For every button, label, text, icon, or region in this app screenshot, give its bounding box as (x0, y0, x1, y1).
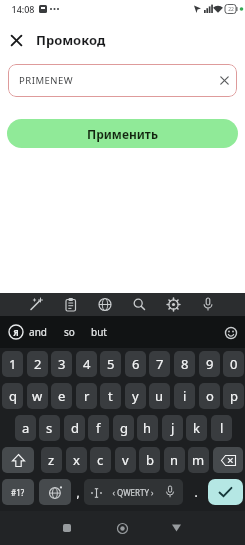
button[interactable]: 0 (223, 351, 244, 377)
staticText: 3 (58, 355, 66, 373)
staticText: 14:08 (11, 3, 35, 15)
button[interactable] (213, 447, 243, 473)
button[interactable]: g (113, 415, 134, 441)
staticText: . (194, 484, 198, 500)
staticText: Я (13, 327, 19, 338)
staticText: , (76, 484, 80, 500)
staticText: e (58, 387, 66, 405)
button[interactable]: 9 (199, 351, 220, 377)
staticText: u (155, 387, 164, 405)
staticText: n (170, 451, 179, 469)
staticText: #1? (11, 487, 25, 498)
button[interactable]: #1? (2, 479, 34, 505)
staticText: i (183, 387, 187, 405)
staticText: g (120, 419, 128, 437)
button[interactable]: 3 (51, 351, 72, 377)
button[interactable]: s (39, 415, 60, 441)
button[interactable]: 6 (125, 351, 146, 377)
staticText: a (22, 419, 30, 437)
button[interactable] (0, 316, 245, 348)
button[interactable] (110, 516, 134, 540)
button[interactable]: c (90, 447, 111, 473)
button[interactable]: f (88, 415, 109, 441)
staticText: m (192, 451, 205, 469)
button[interactable] (55, 516, 79, 540)
staticText: Промокод (36, 31, 106, 49)
button[interactable]: 2 (27, 351, 48, 377)
button[interactable]: m (188, 447, 209, 473)
button[interactable] (39, 479, 71, 505)
staticText: 6 (132, 355, 140, 373)
button[interactable]: d (64, 415, 85, 441)
staticText: f (96, 419, 101, 437)
button[interactable]: 4 (76, 351, 97, 377)
button[interactable] (208, 479, 243, 505)
button[interactable]: 7 (149, 351, 170, 377)
staticText: w (32, 387, 43, 405)
button[interactable]: p (223, 383, 244, 409)
staticText: h (143, 419, 152, 437)
button[interactable] (2, 447, 34, 473)
staticText: 8 (181, 355, 189, 373)
button[interactable] (164, 516, 188, 540)
staticText: 9 (206, 355, 214, 373)
staticText: 22 (228, 6, 234, 13)
button[interactable]: e (51, 383, 72, 409)
button[interactable]: k (186, 415, 207, 441)
staticText: o (206, 387, 214, 405)
button[interactable]: Применить (7, 119, 238, 148)
staticText: v (122, 451, 129, 469)
staticText: 1 (9, 355, 17, 373)
staticText: k (193, 419, 200, 437)
staticText: s (46, 419, 53, 437)
staticText: 5 (107, 355, 115, 373)
button[interactable]: 1 (2, 351, 23, 377)
staticText: j (171, 419, 175, 437)
staticText: 2 (34, 355, 42, 373)
button[interactable]: v (115, 447, 136, 473)
staticText: d (71, 419, 79, 437)
staticText: p (230, 387, 238, 405)
button[interactable] (84, 479, 183, 505)
button[interactable]: PRIMENEW (8, 64, 237, 97)
staticText: r (84, 387, 90, 405)
button[interactable]: w (27, 383, 48, 409)
staticText: y (132, 387, 139, 405)
button[interactable]: 8 (174, 351, 195, 377)
button[interactable]: b (139, 447, 160, 473)
button[interactable]: 5 (100, 351, 121, 377)
staticText: t (108, 387, 113, 405)
staticText: PRIMENEW (19, 74, 74, 87)
button[interactable]: t (100, 383, 121, 409)
staticText: ‹ QWERTY › (112, 487, 154, 498)
button[interactable] (5, 29, 27, 51)
staticText: so (64, 325, 75, 339)
staticText: but (91, 325, 107, 339)
button[interactable]: j (162, 415, 183, 441)
button[interactable]: u (149, 383, 170, 409)
button[interactable]: y (125, 383, 146, 409)
button[interactable]: r (76, 383, 97, 409)
staticText: l (220, 419, 224, 437)
button[interactable]: x (66, 447, 87, 473)
staticText: c (97, 451, 104, 469)
button[interactable]: o (199, 383, 220, 409)
staticText: 7 (156, 355, 164, 373)
staticText: b (146, 451, 154, 469)
staticText: q (9, 387, 17, 405)
button[interactable]: a (15, 415, 36, 441)
button[interactable]: n (164, 447, 185, 473)
staticText: Применить (87, 126, 159, 142)
button[interactable]: i (174, 383, 195, 409)
staticText: z (48, 451, 55, 469)
button[interactable]: l (211, 415, 232, 441)
staticText: and (29, 325, 47, 339)
button[interactable]: z (41, 447, 62, 473)
staticText: x (73, 451, 80, 469)
button[interactable]: h (137, 415, 158, 441)
staticText: 0 (230, 355, 238, 373)
staticText: 4 (83, 355, 91, 373)
button[interactable]: q (2, 383, 23, 409)
